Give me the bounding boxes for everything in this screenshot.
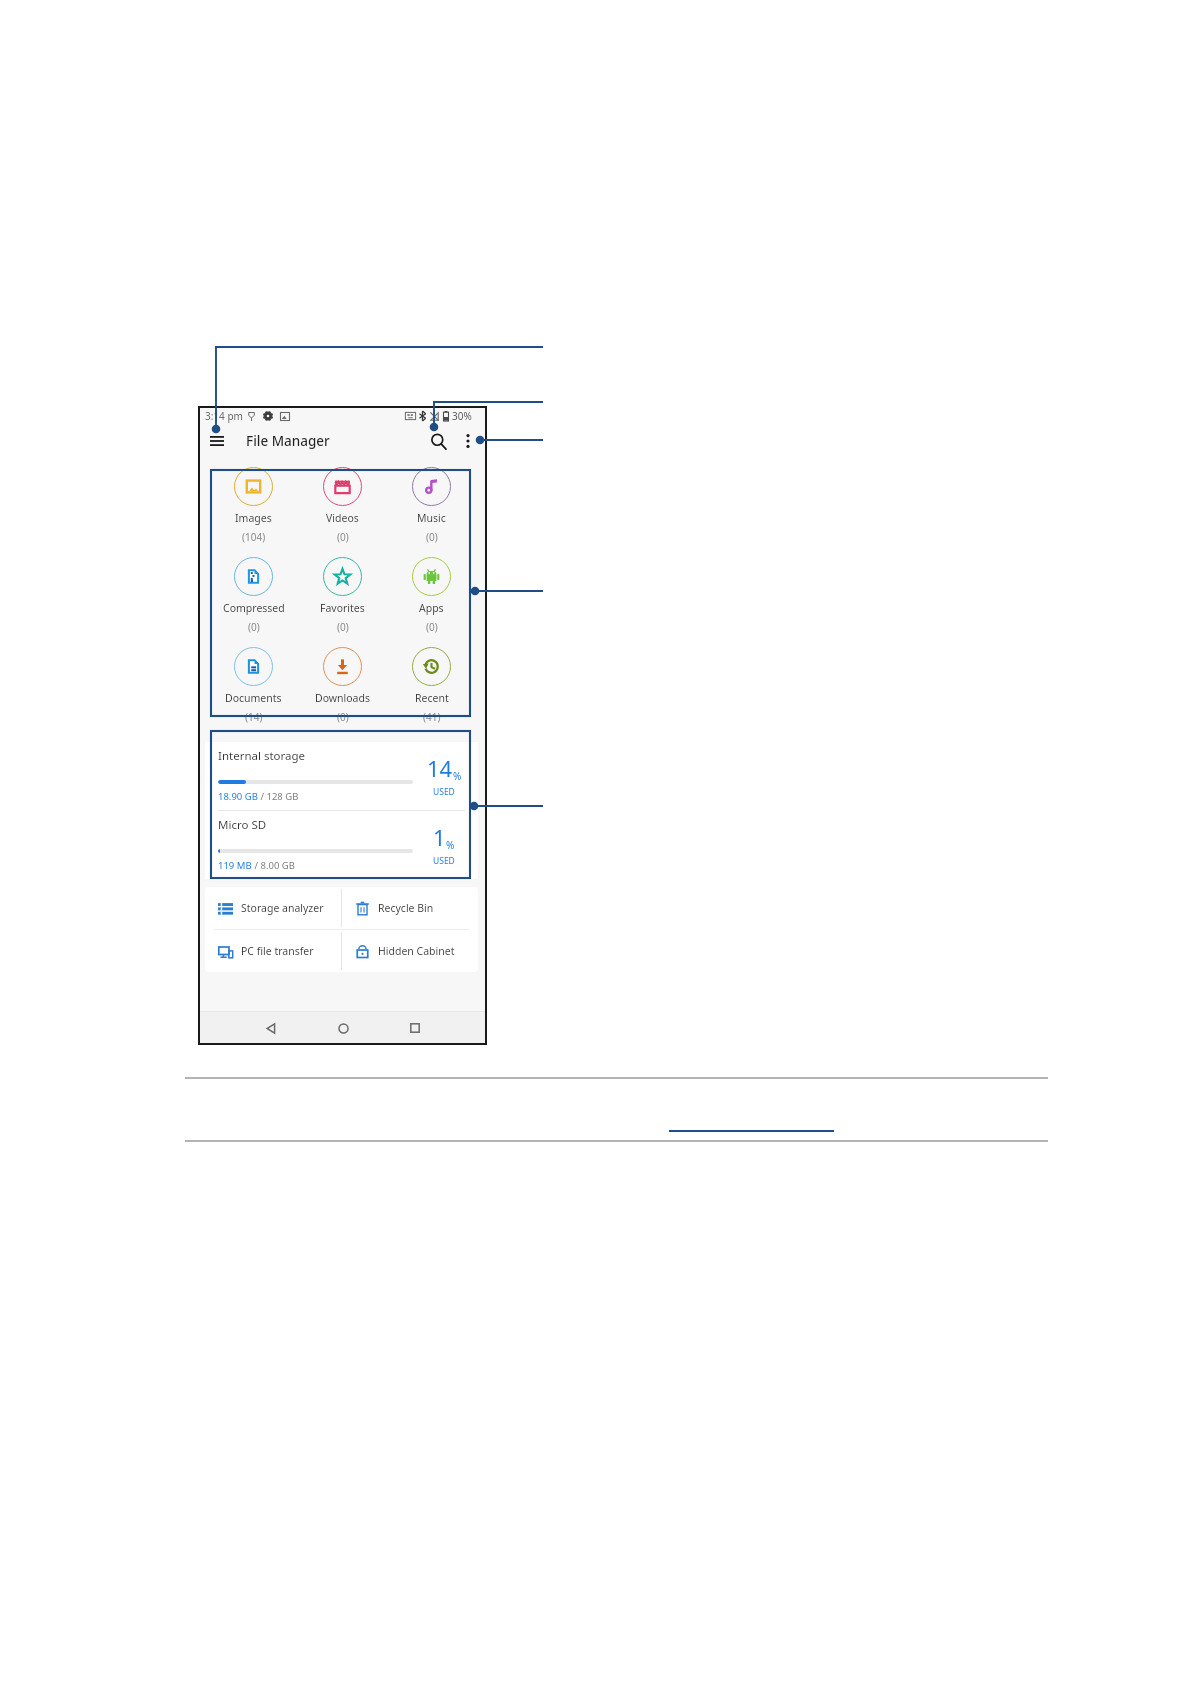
button[interactable]: Documents bbox=[209, 647, 298, 737]
staticText: Images bbox=[235, 511, 272, 525]
staticText: (104) bbox=[242, 530, 266, 544]
staticText: Storage analyzer bbox=[241, 901, 324, 915]
staticText: 1 bbox=[433, 822, 446, 852]
staticText: Favorites bbox=[320, 601, 365, 615]
staticText: (41) bbox=[423, 710, 441, 724]
button[interactable]: Compressed bbox=[209, 557, 298, 647]
staticText: Recycle Bin bbox=[378, 901, 434, 915]
staticText: / 128 GB bbox=[258, 790, 299, 803]
staticText: (0) bbox=[337, 710, 349, 724]
button[interactable]: Favorites bbox=[298, 557, 387, 647]
staticText: / 8.00 GB bbox=[252, 859, 295, 872]
button[interactable]: Menu bbox=[198, 422, 236, 460]
staticText: Documents bbox=[225, 691, 282, 705]
button[interactable]: Apps bbox=[387, 557, 476, 647]
staticText: (0) bbox=[426, 620, 438, 634]
staticText: % bbox=[453, 769, 462, 783]
staticText: Downloads bbox=[315, 691, 370, 705]
staticText: Recent bbox=[415, 691, 449, 705]
staticText: 18.90 GB bbox=[218, 790, 258, 803]
button[interactable]: Music bbox=[387, 467, 476, 557]
staticText: Micro SD bbox=[218, 817, 267, 833]
button[interactable]: Hidden Cabinet bbox=[342, 930, 478, 972]
button[interactable]: Recycle Bin bbox=[342, 887, 478, 929]
button[interactable]: Recents bbox=[397, 1012, 433, 1044]
staticText: (0) bbox=[426, 530, 438, 544]
staticText: (14) bbox=[245, 710, 263, 724]
staticText: USED bbox=[433, 855, 455, 867]
staticText: Videos bbox=[326, 511, 359, 525]
button[interactable]: More options bbox=[455, 422, 481, 460]
button[interactable]: Recent bbox=[387, 647, 476, 737]
button[interactable]: Internal storage bbox=[205, 742, 478, 810]
button[interactable]: Back bbox=[253, 1012, 289, 1044]
button[interactable]: Search bbox=[421, 422, 455, 460]
button[interactable]: Images bbox=[209, 467, 298, 557]
staticText: 119 MB bbox=[218, 859, 252, 872]
staticText: Apps bbox=[419, 601, 444, 615]
button[interactable]: Home bbox=[325, 1012, 361, 1044]
staticText: (0) bbox=[248, 620, 260, 634]
staticText: USED bbox=[433, 786, 455, 798]
staticText: File Manager bbox=[246, 432, 330, 450]
staticText: 14 bbox=[427, 753, 453, 783]
button[interactable]: Micro SD bbox=[205, 811, 478, 879]
button[interactable]: Videos bbox=[298, 467, 387, 557]
staticText: PC file transfer bbox=[241, 944, 314, 958]
staticText: 3:14 pm bbox=[205, 409, 243, 423]
staticText: Internal storage bbox=[218, 748, 306, 764]
staticText: 30% bbox=[452, 409, 472, 423]
staticText: (0) bbox=[337, 620, 349, 634]
staticText: Hidden Cabinet bbox=[378, 944, 455, 958]
button[interactable]: Downloads bbox=[298, 647, 387, 737]
button[interactable]: Storage analyzer bbox=[205, 887, 341, 929]
staticText: Music bbox=[417, 511, 446, 525]
staticText: (0) bbox=[337, 530, 349, 544]
staticText: Compressed bbox=[223, 601, 285, 615]
staticText: % bbox=[446, 838, 455, 852]
button[interactable]: PC file transfer bbox=[205, 930, 341, 972]
